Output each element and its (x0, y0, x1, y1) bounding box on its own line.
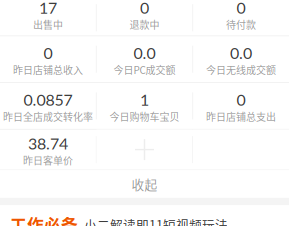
staticText: 工作必备 (10, 212, 78, 226)
button[interactable]: 0 (0, 36, 96, 82)
button[interactable]: 0 (97, 0, 192, 35)
staticText: 0 (43, 43, 52, 62)
staticText: 0.0857 (23, 90, 72, 109)
staticText: 昨日店铺总收入 (13, 62, 83, 77)
staticText: 昨日客单价 (23, 153, 73, 167)
staticText: 今日购物车宝贝 (109, 109, 179, 124)
staticText: 0.0 (230, 43, 252, 62)
staticText: 待付款 (226, 17, 256, 32)
staticText: 昨日店铺总支出 (206, 109, 276, 124)
button[interactable]: 17 (0, 0, 96, 35)
staticText: 昨日全店成交转化率 (3, 109, 93, 124)
button[interactable]: 收起 (0, 170, 289, 198)
staticText: 出售中 (33, 17, 63, 32)
staticText: 0 (237, 0, 246, 17)
staticText: 0 (140, 0, 149, 17)
staticText: 退款中 (129, 17, 159, 32)
button[interactable]: 0.0 (97, 36, 192, 82)
staticText: 小二解读即11短视频玩法 (84, 215, 228, 226)
staticText: 今日PC成交额 (113, 62, 175, 77)
button[interactable]: 0 (193, 83, 289, 129)
staticText: 0.0 (133, 43, 155, 62)
button[interactable]: 0 (193, 0, 289, 35)
button[interactable]: 0.0857 (0, 83, 96, 129)
staticText: 38.74 (28, 134, 68, 153)
staticText: 1 (140, 90, 149, 109)
button[interactable]: 0.0 (193, 36, 289, 82)
staticText: 17 (39, 0, 57, 17)
staticText: 今日无线成交额 (206, 62, 276, 77)
staticText: 收起 (131, 175, 157, 193)
button[interactable]: 1 (97, 83, 192, 129)
staticText: 0 (237, 90, 246, 109)
button[interactable]: 38.74 (0, 130, 96, 170)
